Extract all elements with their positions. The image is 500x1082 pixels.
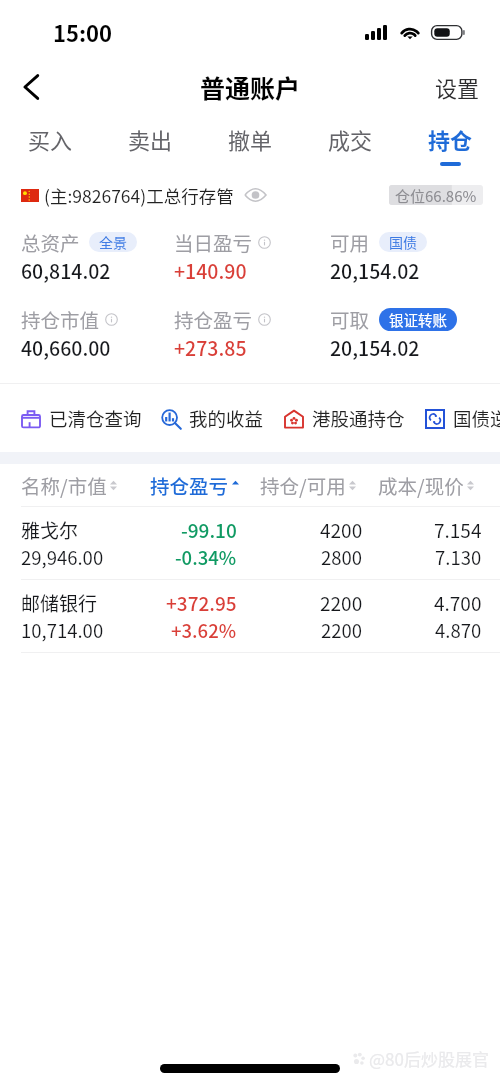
staticText: 2200 [321,617,363,644]
button[interactable]: 我的收益 [161,405,264,432]
staticText: 2200 [320,589,363,617]
button[interactable]: 仓位66.86% [389,185,483,205]
staticText: 普通账户 [200,69,301,105]
button[interactable]: 全景 [89,232,137,252]
staticText: -0.34% [175,544,237,571]
button[interactable]: 雅戈尔 [0,507,500,579]
staticText: 港股通持仓 [312,405,405,432]
staticText: 卖出 [128,123,173,155]
staticText: 仓位66.86% [395,185,477,205]
staticText: 持仓盈亏 [150,471,229,499]
button[interactable]: 成交 [300,112,400,168]
button[interactable]: 返回 [8,64,54,110]
button[interactable]: 已清仓查询 [21,405,142,432]
staticText: 设置 [435,71,480,103]
button[interactable]: 银证转账 [379,308,457,331]
staticText: 7.154 [434,516,482,544]
staticText: 雅戈尔 [21,516,79,544]
button[interactable]: 持仓 [400,112,500,168]
button[interactable]: 邮储银行 [0,580,500,652]
staticText: 我的收益 [189,405,264,432]
staticText: 国债 [389,232,417,252]
staticText: 成交 [328,123,373,155]
staticText: 已清仓查询 [49,405,142,432]
staticText: 成本/现价 [378,471,464,499]
staticText: 总资产 [21,228,80,256]
staticText: 持仓盈亏 [174,305,253,333]
staticText: 15:00 [53,16,113,48]
button[interactable]: 国债 [379,232,427,252]
staticText: (主:9826764)工总行存管 [44,183,234,208]
button[interactable]: 设置 [429,63,486,111]
staticText: 邮储银行 [21,589,98,617]
staticText: +273.85 [174,333,247,361]
staticText: 银证转账 [389,309,447,330]
staticText: +372.95 [166,589,237,617]
staticText: 4200 [320,516,363,544]
button[interactable]: 名称/市值 [21,464,150,506]
staticText: 名称/市值 [21,471,107,499]
button[interactable]: 撤单 [200,112,300,168]
staticText: 全景 [99,232,127,252]
staticText: 买入 [28,123,73,155]
staticText: @80后炒股展官 [369,1046,489,1071]
staticText: 40,660.00 [21,333,111,361]
staticText: 当日盈亏 [174,228,253,256]
staticText: 可取 [330,305,370,333]
staticText: 20,154.02 [330,256,420,284]
staticText: 4.700 [434,589,482,617]
button[interactable]: 成本/现价 [378,464,486,506]
staticText: 撤单 [228,123,273,155]
staticText: 29,946.00 [21,544,104,571]
button[interactable]: 国债逆 [425,405,500,432]
staticText: 可用 [330,228,370,256]
staticText: +140.90 [174,256,247,284]
staticText: +3.62% [171,617,237,644]
button[interactable]: 持仓盈亏 [150,464,260,506]
staticText: 4.870 [435,617,482,644]
staticText: 持仓/可用 [260,471,346,499]
button[interactable]: 持仓/可用 [260,464,378,506]
staticText: 60,814.02 [21,256,111,284]
button[interactable]: 买入 [0,112,100,168]
button[interactable]: 显示金额 [242,182,268,208]
staticText: 2800 [321,544,363,571]
button[interactable]: 港股通持仓 [284,405,405,432]
staticText: 国债逆 [453,405,500,432]
staticText: 20,154.02 [330,333,420,361]
staticText: 持仓 [428,123,473,155]
staticText: -99.10 [181,516,237,544]
staticText: 10,714.00 [21,617,104,644]
staticText: 持仓市值 [21,305,100,333]
button[interactable]: 卖出 [100,112,200,168]
staticText: 7.130 [435,544,482,571]
